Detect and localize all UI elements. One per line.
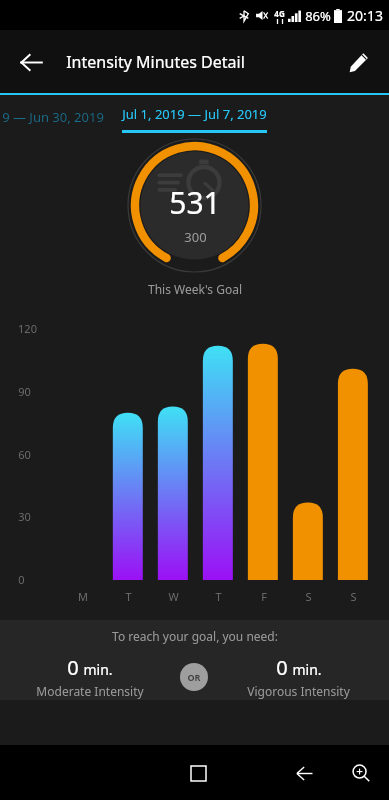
staticText: W	[168, 589, 179, 604]
staticText: 120	[18, 321, 37, 336]
staticText: 30	[18, 509, 31, 524]
staticText: 60	[18, 447, 31, 462]
staticText: 4G	[274, 8, 285, 19]
button[interactable]: 0	[0, 654, 180, 699]
button[interactable]: 531	[127, 138, 262, 273]
button[interactable]: Jul 1, 2019 — Jul 7, 2019	[122, 105, 267, 133]
staticText: 86%	[305, 7, 331, 25]
staticText: F	[261, 589, 267, 604]
button[interactable]: Back	[282, 751, 326, 795]
staticText: min.	[83, 660, 113, 679]
staticText: 20:13	[347, 6, 383, 25]
staticText: To reach your goal, you need:	[112, 628, 278, 644]
staticText: Intensity Minutes Detail	[66, 51, 245, 73]
staticText: 531	[169, 182, 221, 223]
staticText: M	[78, 589, 88, 604]
button[interactable]: Back	[8, 39, 54, 85]
staticText: OR	[187, 671, 201, 683]
staticText: S	[305, 589, 312, 604]
staticText: This Week's Goal	[148, 281, 242, 297]
button[interactable]: Search	[339, 751, 383, 795]
staticText: Jul 1, 2019 — Jul 7, 2019	[122, 105, 267, 123]
staticText: 300	[184, 228, 207, 246]
staticText: 9 — Jun 30, 2019	[2, 108, 104, 126]
staticText: 0	[276, 654, 288, 681]
button[interactable]: 9 — Jun 30, 2019	[0, 102, 112, 132]
staticText: S	[350, 589, 357, 604]
staticText: Vigorous Intensity	[247, 683, 350, 699]
staticText: Moderate Intensity	[36, 683, 144, 699]
button[interactable]: 0	[208, 654, 389, 699]
staticText: T	[215, 589, 222, 604]
staticText: 0	[18, 572, 25, 587]
button[interactable]: Edit	[335, 39, 381, 85]
staticText: 0	[67, 654, 79, 681]
staticText: 90	[18, 384, 31, 399]
staticText: T	[125, 589, 132, 604]
button[interactable]: Recents	[176, 751, 220, 795]
staticText: min.	[292, 660, 322, 679]
